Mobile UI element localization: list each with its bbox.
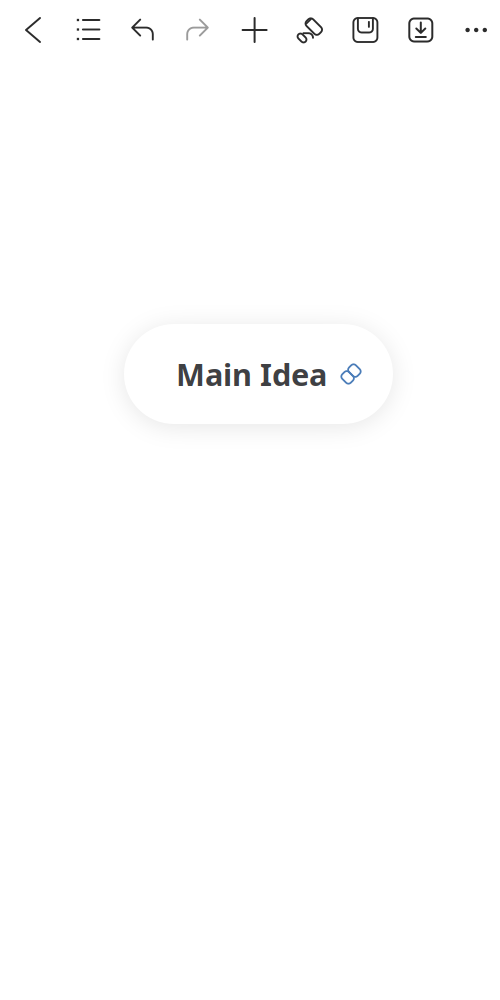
button[interactable]: Main Idea — [124, 324, 393, 424]
button[interactable]: Add node — [227, 0, 282, 60]
button[interactable]: Redo — [171, 0, 227, 60]
button[interactable]: Save — [338, 0, 393, 60]
button[interactable]: Style — [282, 0, 338, 60]
button[interactable]: More — [448, 0, 500, 60]
button[interactable]: Back — [5, 0, 61, 60]
staticText: Main Idea — [176, 354, 327, 394]
button[interactable]: Undo — [116, 0, 171, 60]
button[interactable]: Export — [393, 0, 448, 60]
button[interactable]: Outline — [61, 0, 116, 60]
